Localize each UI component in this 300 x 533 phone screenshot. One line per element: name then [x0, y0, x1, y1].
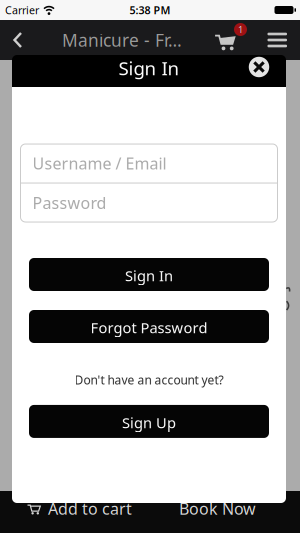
- staticText: 5:38 PM: [129, 3, 170, 17]
- button[interactable]: [0, 32, 31, 48]
- button[interactable]: Username / Email: [20, 144, 277, 182]
- staticText: Book Now: [179, 498, 256, 519]
- button[interactable]: Password: [20, 183, 277, 222]
- staticText: Sign In: [125, 266, 173, 285]
- staticText: Forgot Password: [90, 318, 207, 337]
- button[interactable]: [247, 33, 300, 47]
- staticText: Sign In: [118, 56, 179, 80]
- button[interactable]: Forgot Password: [29, 310, 269, 343]
- button[interactable]: Add to cart: [0, 498, 132, 519]
- button[interactable]: 1: [214, 29, 247, 50]
- staticText: Manicure - Fr…: [62, 28, 182, 51]
- staticText: Add to cart: [48, 498, 132, 519]
- staticText: Password: [32, 192, 106, 213]
- staticText: Username / Email: [32, 153, 166, 174]
- button[interactable]: [249, 57, 269, 77]
- button[interactable]: Sign In: [29, 258, 269, 291]
- staticText: Carrier: [5, 3, 39, 17]
- button[interactable]: Book Now: [179, 498, 300, 519]
- button[interactable]: Sign Up: [29, 405, 269, 438]
- staticText: 1: [238, 23, 243, 36]
- staticText: Don't have an account yet?: [74, 372, 223, 388]
- staticText: Sign Up: [122, 413, 176, 432]
